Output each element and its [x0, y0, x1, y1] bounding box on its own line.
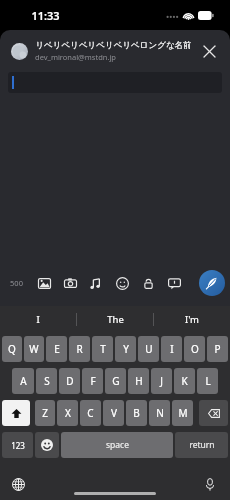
staticText: X [65, 406, 71, 420]
button[interactable]: Camera [61, 274, 79, 292]
button[interactable]: W [24, 336, 44, 362]
button[interactable]: 500 [5, 273, 27, 293]
button[interactable]: X [57, 400, 78, 426]
staticText: V [111, 406, 117, 420]
staticText: B [133, 406, 140, 420]
staticText: M [178, 406, 188, 420]
staticText: Y [123, 342, 129, 356]
button[interactable]: R [69, 336, 90, 362]
button[interactable]: N [149, 400, 170, 426]
button[interactable]: Z [35, 400, 55, 426]
button[interactable]: Content warning [165, 274, 183, 292]
button[interactable]: Q [2, 336, 22, 362]
staticText: R [76, 342, 83, 356]
staticText: 123 [11, 440, 25, 451]
staticText: return [189, 439, 215, 451]
button[interactable]: T [92, 336, 113, 362]
button[interactable]: リベリベリベリベリベリベロングな名前 [0, 30, 230, 72]
button[interactable]: space [61, 432, 173, 458]
staticText: K [181, 374, 188, 388]
staticText: H [135, 374, 143, 388]
staticText: 11:33 [31, 8, 60, 23]
button[interactable]: Emoji keyboard [35, 432, 59, 458]
button[interactable]: Visibility [139, 274, 157, 292]
staticText: J [160, 374, 163, 388]
staticText: リベリベリベリベリベリベロングな名前 [35, 40, 192, 51]
button[interactable]: Dictation [200, 474, 220, 494]
button[interactable]: P [207, 336, 228, 362]
button[interactable]: I [0, 306, 76, 333]
button[interactable]: Backspace [199, 400, 228, 426]
staticText: S [44, 374, 50, 388]
button[interactable]: Emoji [113, 274, 131, 292]
staticText: space [106, 439, 129, 451]
button[interactable]: F [82, 368, 103, 394]
button[interactable] [8, 72, 222, 93]
staticText: A [20, 374, 27, 388]
button[interactable]: L [197, 368, 218, 394]
button[interactable]: The [77, 306, 153, 333]
staticText: C [87, 406, 94, 420]
button[interactable]: return [175, 432, 228, 458]
staticText: W [29, 342, 39, 356]
button[interactable]: V [103, 400, 124, 426]
button[interactable]: Change keyboard language [8, 474, 28, 494]
button[interactable]: Add image [35, 274, 53, 292]
staticText: G [112, 374, 120, 388]
staticText: L [205, 374, 211, 388]
button[interactable]: D [59, 368, 80, 394]
staticText: D [66, 374, 74, 388]
staticText: The [107, 313, 124, 326]
staticText: N [156, 406, 164, 420]
staticText: F [90, 374, 96, 388]
staticText: P [214, 342, 221, 356]
button[interactable]: S [36, 368, 57, 394]
staticText: T [100, 342, 106, 356]
button[interactable]: Shift [2, 400, 30, 426]
button[interactable]: 123 [2, 432, 33, 458]
staticText: O [191, 342, 199, 356]
button[interactable]: A [12, 368, 34, 394]
button[interactable]: Post [199, 270, 225, 296]
button[interactable]: E [46, 336, 67, 362]
button[interactable]: I [161, 336, 182, 362]
staticText: I [170, 342, 174, 356]
button[interactable]: B [126, 400, 147, 426]
button[interactable]: M [172, 400, 193, 426]
staticText: dev_mironal@mstdn.jp [35, 52, 116, 62]
button[interactable]: K [174, 368, 195, 394]
button[interactable]: C [80, 400, 101, 426]
button[interactable]: Y [115, 336, 136, 362]
button[interactable]: I'm [154, 306, 230, 333]
staticText: U [145, 342, 153, 356]
staticText: I [36, 313, 40, 326]
button[interactable]: G [105, 368, 126, 394]
button[interactable]: Close [194, 36, 224, 66]
staticText: Z [42, 406, 48, 420]
button[interactable]: J [151, 368, 172, 394]
staticText: Q [8, 342, 16, 356]
button[interactable]: Add audio [87, 274, 105, 292]
button[interactable]: O [184, 336, 205, 362]
staticText: I'm [185, 313, 199, 326]
button[interactable]: U [138, 336, 159, 362]
staticText: E [54, 342, 60, 356]
staticText: 500 [10, 278, 23, 288]
button[interactable]: H [128, 368, 149, 394]
